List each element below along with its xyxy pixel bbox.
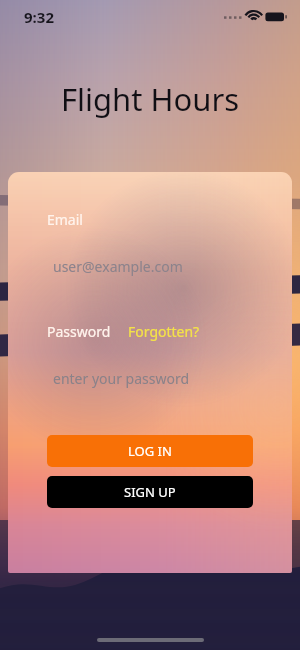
staticText: enter your password bbox=[53, 369, 190, 388]
button[interactable]: enter your password bbox=[8, 365, 292, 391]
button[interactable]: user@example.com bbox=[8, 253, 292, 279]
staticText: Email bbox=[47, 210, 83, 229]
button[interactable]: Forgotten? bbox=[128, 322, 200, 341]
staticText: LOG IN bbox=[128, 442, 172, 460]
staticText: Forgotten? bbox=[128, 322, 200, 341]
staticText: Password bbox=[47, 322, 111, 341]
button[interactable]: LOG IN bbox=[47, 435, 253, 467]
button[interactable]: SIGN UP bbox=[47, 476, 253, 508]
staticText: Flight Hours bbox=[0, 78, 300, 120]
staticText: user@example.com bbox=[53, 257, 183, 276]
other: Home indicator bbox=[97, 638, 204, 642]
staticText: SIGN UP bbox=[124, 483, 176, 501]
staticText: 9:32 bbox=[24, 7, 54, 27]
